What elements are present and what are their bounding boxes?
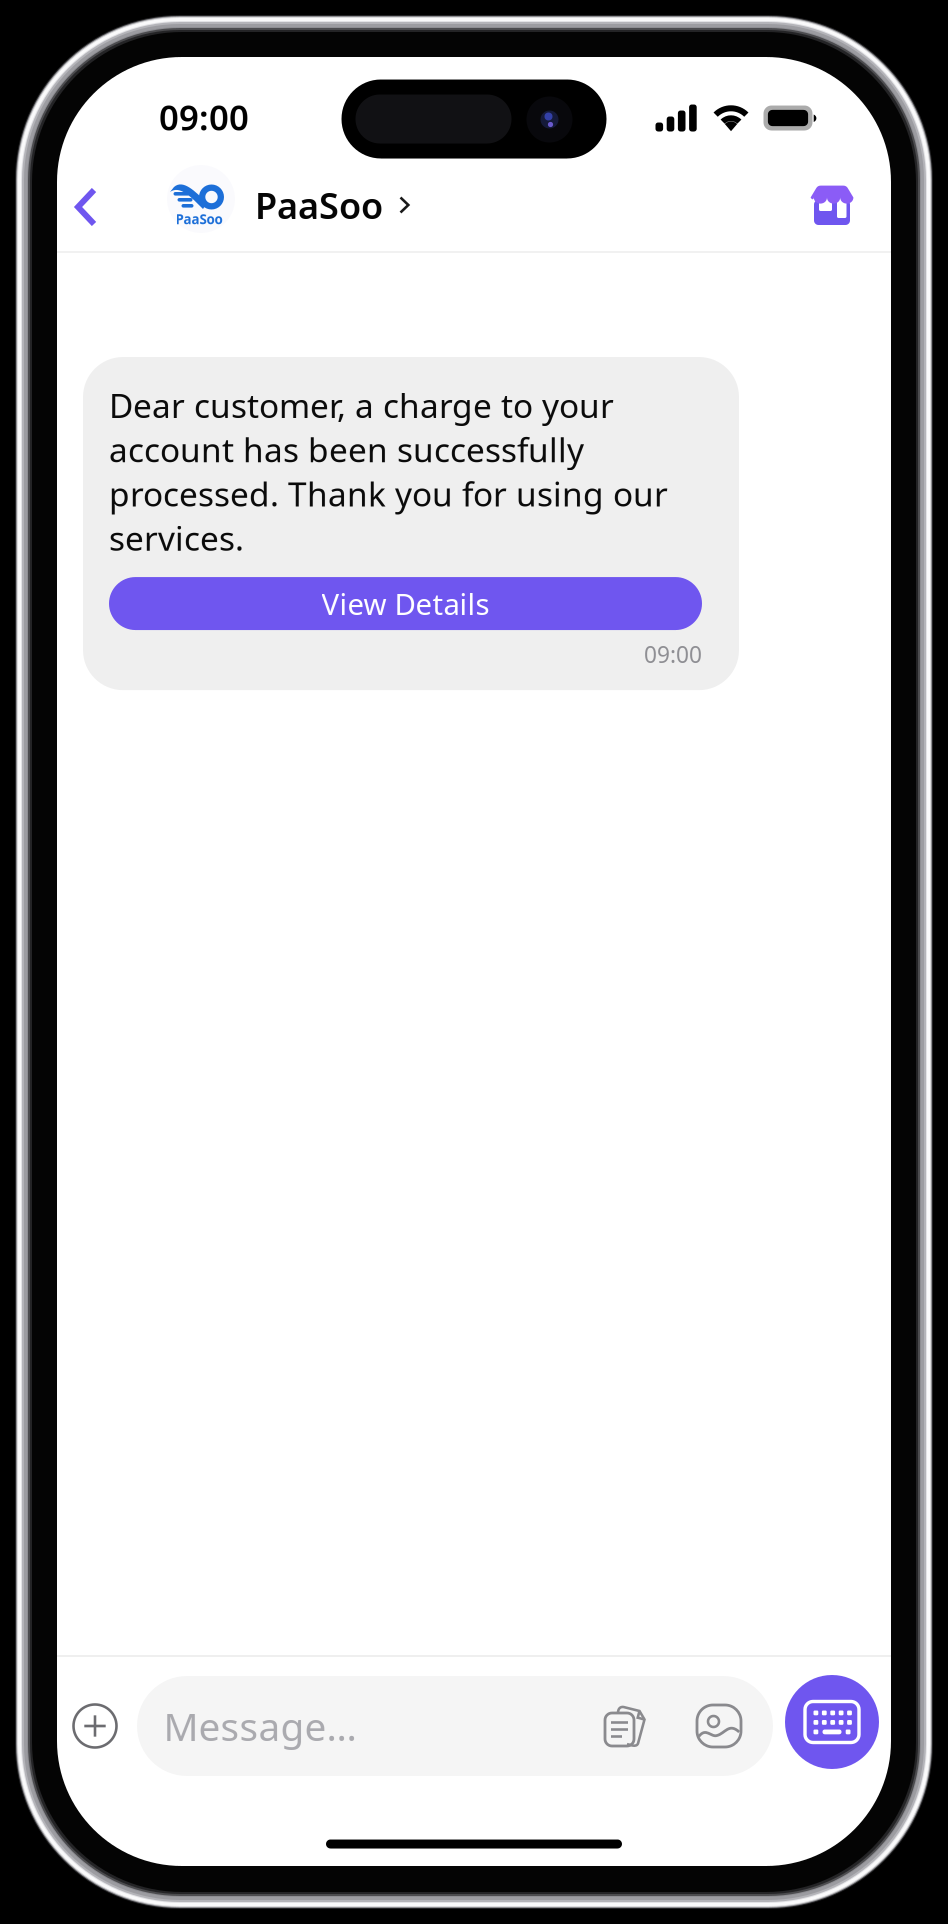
staticText: 09:00 [644, 639, 702, 669]
button[interactable]: Back [55, 171, 117, 243]
button[interactable]: View Details [109, 577, 702, 630]
staticText: Message... [163, 1700, 356, 1752]
staticText: Dear customer, a charge to your account … [109, 383, 668, 560]
button[interactable]: Keyboard [785, 1675, 879, 1769]
button[interactable]: Add attachment [63, 1694, 127, 1758]
staticText: PaaSoo [175, 210, 222, 228]
staticText: PaaSoo [255, 181, 383, 229]
button[interactable]: PaaSoo [160, 169, 410, 241]
button[interactable]: Message field [137, 1676, 773, 1776]
button[interactable]: Templates [593, 1694, 657, 1758]
staticText: View Details [321, 584, 489, 623]
button[interactable]: Photos [687, 1694, 751, 1758]
staticText: 09:00 [159, 94, 249, 140]
button[interactable]: Store [796, 169, 868, 241]
